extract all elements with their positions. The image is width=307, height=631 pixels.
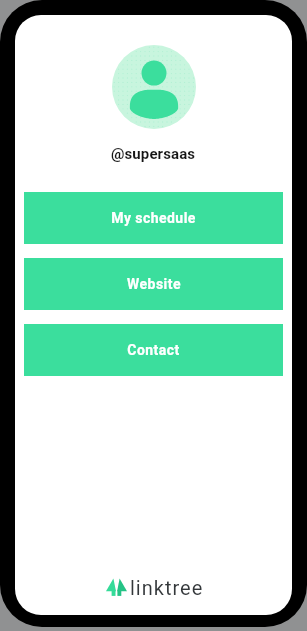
staticText: Website <box>127 276 181 292</box>
button[interactable]: Linktree <box>106 576 202 598</box>
staticText: Contact <box>127 342 180 358</box>
button[interactable]: Contact <box>24 324 283 376</box>
other: Linktree <box>106 576 129 598</box>
button[interactable]: Website <box>24 258 283 310</box>
staticText: @supersaas <box>111 145 196 163</box>
staticText: linktree <box>130 576 204 598</box>
button[interactable]: My schedule <box>24 192 283 244</box>
staticText: My schedule <box>111 210 196 226</box>
